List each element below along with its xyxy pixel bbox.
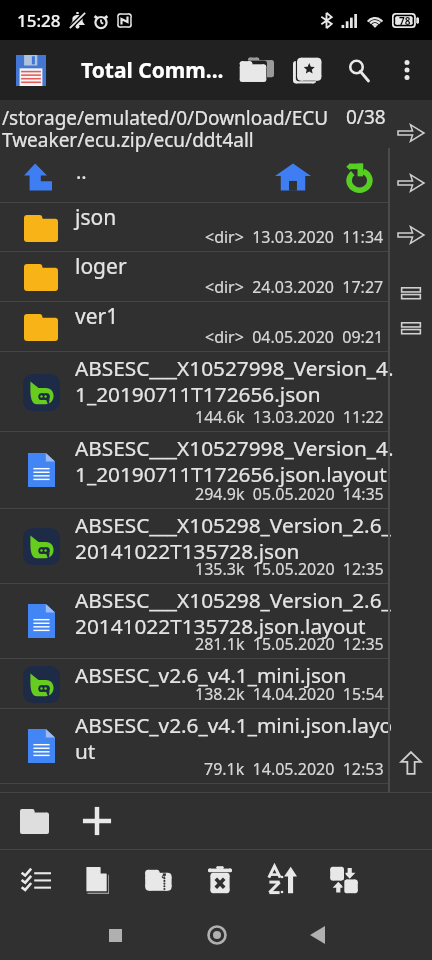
- staticText: ABSESC___X10527998_Version_4.1_20190711T…: [75, 354, 402, 409]
- staticText: 0/38: [346, 104, 386, 130]
- button[interactable]: Scroll to second item: [390, 168, 432, 198]
- staticText: Total Comm...: [81, 56, 224, 85]
- button[interactable]: ABSESC___X105298_Version_2.6_20141022T13…: [0, 509, 389, 583]
- button[interactable]: Total Commander: [11, 50, 51, 90]
- staticText: 138.2k 14.04.2020 15:54: [195, 683, 384, 705]
- staticText: ABSESC___X10527998_Version_4.1_20190711T…: [75, 434, 402, 489]
- staticText: 144.6k 13.03.2020 11:22: [195, 406, 384, 428]
- staticText: 294.9k 05.05.2020 14:35: [195, 483, 384, 505]
- button[interactable]: ver1: [0, 302, 389, 351]
- button[interactable]: Bookmarks: [283, 46, 331, 94]
- button[interactable]: Back: [293, 911, 341, 959]
- button[interactable]: Scroll to top: [390, 748, 432, 778]
- button[interactable]: Compress: [133, 850, 185, 910]
- staticText: 135.3k 15.05.2020 12:35: [195, 558, 384, 580]
- staticText: 281.1k 15.05.2020 12:35: [195, 633, 384, 655]
- button[interactable]: Copy: [71, 850, 123, 910]
- button[interactable]: Home: [275, 159, 311, 195]
- button[interactable]: Search: [334, 46, 382, 94]
- staticText: ABSESC___X105298_Version_2.6_20141022T13…: [75, 586, 402, 641]
- staticText: <dir> 04.05.2020 09:21: [205, 326, 384, 348]
- button[interactable]: Split view 2: [390, 313, 432, 343]
- staticText: ABSESC_v2.6_v4.1_mini.json.layout: [75, 711, 402, 766]
- button[interactable]: Sort: [256, 850, 308, 910]
- button[interactable]: Scroll to third item: [390, 220, 432, 250]
- button[interactable]: Add: [75, 799, 119, 843]
- button[interactable]: loger: [0, 252, 389, 301]
- button[interactable]: ABSESC___X10527998_Version_4.1_20190711T…: [0, 432, 389, 508]
- button[interactable]: ABSESC___X10527998_Version_4.1_20190711T…: [0, 352, 389, 431]
- staticText: 79.1k 14.05.2020 12:53: [204, 758, 384, 780]
- staticText: ABSESC_v2.6_v4.1_mini.json: [75, 661, 402, 689]
- staticText: 15:28: [17, 9, 61, 32]
- button[interactable]: Refresh: [341, 159, 377, 195]
- staticText: /storage/emulated/0/Download/ECU Tweaker…: [2, 105, 335, 152]
- button[interactable]: More options: [387, 50, 427, 90]
- button[interactable]: Select all: [10, 850, 62, 910]
- button[interactable]: Up one level: [20, 159, 56, 195]
- button[interactable]: Recents: [91, 911, 139, 959]
- staticText: <dir> 13.03.2020 11:34: [205, 226, 384, 248]
- button[interactable]: Delete: [194, 850, 246, 910]
- button[interactable]: Folders: [232, 46, 280, 94]
- staticText: <dir> 24.03.2020 17:27: [205, 276, 384, 298]
- staticText: loger: [75, 252, 127, 281]
- button[interactable]: ABSESC___X105298_Version_2.6_20141022T13…: [0, 584, 389, 658]
- button[interactable]: Scroll to first item: [390, 118, 432, 148]
- button[interactable]: Home: [193, 911, 241, 959]
- button[interactable]: ABSESC_v2.6_v4.1_mini.json: [0, 659, 389, 708]
- staticText: ABSESC___X105298_Version_2.6_20141022T13…: [75, 511, 402, 566]
- button[interactable]: ABSESC_v2.6_v4.1_mini.json.layout: [0, 709, 389, 783]
- button[interactable]: Move: [318, 850, 370, 910]
- staticText: 78: [399, 14, 411, 28]
- staticText: ..: [76, 158, 87, 185]
- staticText: json: [75, 203, 117, 232]
- button[interactable]: New folder: [12, 799, 56, 843]
- button[interactable]: Split view 1: [390, 278, 432, 308]
- button[interactable]: json: [0, 203, 389, 251]
- staticText: ver1: [75, 302, 119, 331]
